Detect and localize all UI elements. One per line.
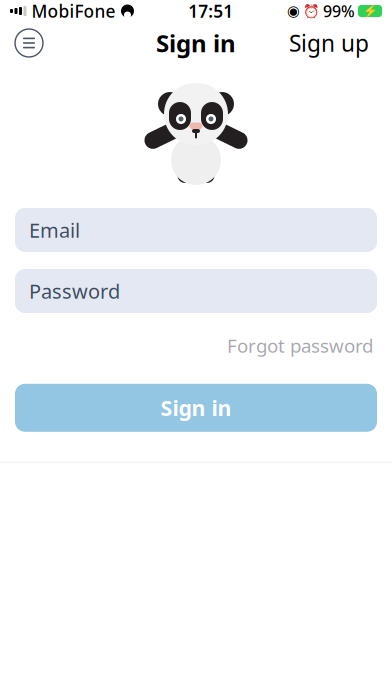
staticText: 17:51	[188, 0, 233, 22]
staticText: Password	[29, 278, 120, 304]
staticText: Forgot password	[227, 333, 373, 358]
button[interactable]: Sign up	[285, 20, 373, 66]
staticText: Sign in	[156, 27, 236, 59]
button[interactable]: Password	[15, 269, 377, 313]
button[interactable]: Email	[15, 208, 377, 252]
staticText: ◉	[287, 3, 300, 19]
button[interactable]: Sign in	[15, 384, 377, 432]
staticText: Email	[29, 217, 80, 243]
staticText: MobiFone	[31, 0, 115, 22]
staticText: ⚡	[362, 4, 377, 18]
staticText: ⏰	[303, 3, 320, 19]
staticText: Sign in	[160, 394, 231, 422]
staticText: Sign up	[289, 28, 369, 58]
button[interactable]: Menu	[7, 21, 51, 65]
staticText: 99%	[323, 0, 355, 22]
button[interactable]: Forgot password	[227, 325, 373, 366]
